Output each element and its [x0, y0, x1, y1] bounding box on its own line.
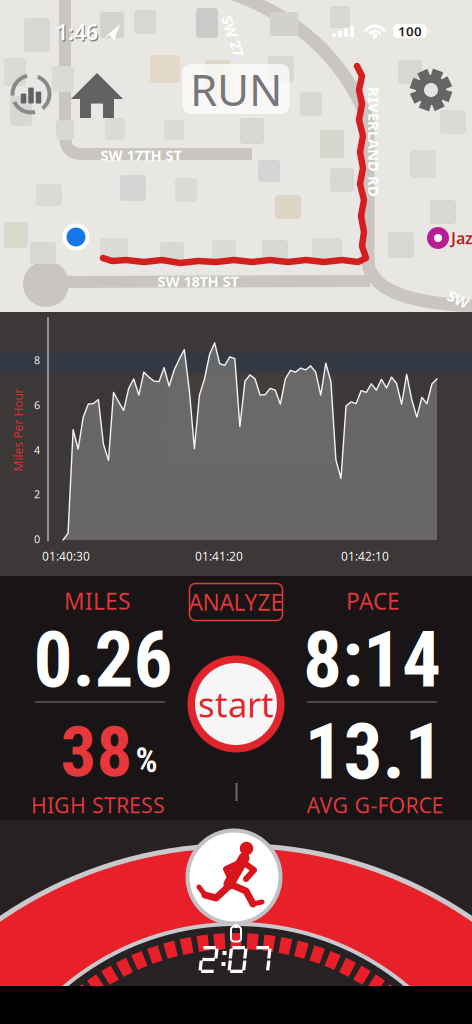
- staticText: Miles Per Hour: [0, 422, 59, 438]
- staticText: 01:41:20: [195, 548, 243, 564]
- button[interactable]: ANALYZE: [188, 583, 283, 620]
- staticText: SW 27: [212, 26, 254, 46]
- staticText: 01:42:10: [341, 548, 389, 564]
- button[interactable]: Statistics: [8, 71, 54, 117]
- staticText: 1:46: [57, 19, 99, 47]
- button[interactable]: start: [187, 655, 284, 752]
- staticText: SW 17TH ST: [100, 145, 181, 165]
- staticText: AVG G-FORCE: [306, 791, 443, 819]
- staticText: 13.1: [304, 707, 443, 797]
- staticText: start: [198, 681, 274, 727]
- staticText: 38: [60, 711, 132, 793]
- button[interactable]: Home: [70, 72, 124, 120]
- staticText: Jaz: [451, 227, 472, 249]
- staticText: 100: [398, 22, 422, 40]
- staticText: RUN: [190, 60, 282, 118]
- button[interactable]: Settings: [408, 67, 454, 113]
- staticText: 2: [34, 487, 40, 501]
- staticText: 8:14: [303, 615, 441, 705]
- staticText: SW 19TH ST: [155, 424, 244, 446]
- staticText: 6: [34, 398, 40, 412]
- staticText: 01:40:30: [42, 548, 90, 564]
- staticText: ANALYZE: [188, 587, 283, 617]
- staticText: 0: [34, 532, 40, 546]
- staticText: HIGH STRESS: [31, 791, 165, 819]
- staticText: RIVERLAND RD: [319, 132, 429, 152]
- staticText: 0.26: [33, 615, 172, 705]
- staticText: SW 18TH ST: [157, 271, 238, 291]
- staticText: %: [135, 740, 157, 781]
- staticText: SW: [447, 289, 469, 309]
- staticText: PACE: [346, 586, 400, 616]
- staticText: 1:46: [56, 18, 98, 46]
- staticText: 4: [34, 443, 40, 457]
- staticText: 8: [34, 353, 40, 367]
- staticText: MILES: [64, 586, 130, 616]
